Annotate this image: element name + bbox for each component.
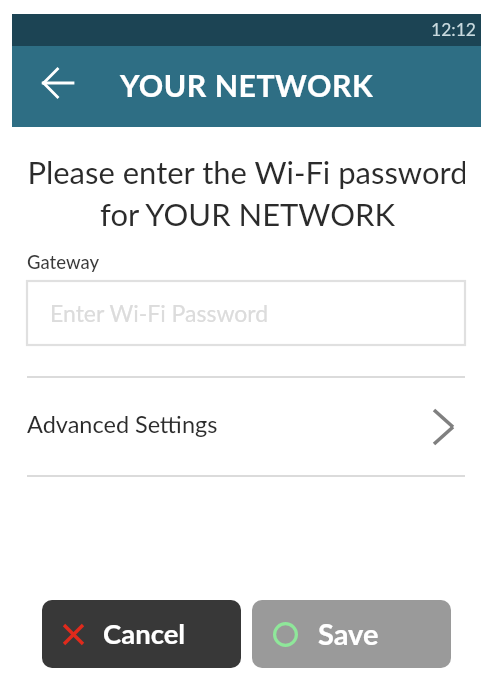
staticText: 12:12 — [431, 19, 476, 40]
button[interactable]: Save — [252, 600, 451, 668]
staticText: YOUR NETWORK — [120, 67, 374, 103]
button[interactable]: Enter Wi-Fi Password — [27, 281, 465, 345]
button[interactable]: Advanced Settings — [27, 378, 465, 475]
staticText: Save — [318, 616, 379, 651]
staticText: Enter Wi-Fi Password — [50, 299, 269, 327]
button[interactable]: Back — [12, 46, 102, 127]
staticText: Cancel — [103, 617, 186, 650]
staticText: Gateway — [27, 251, 99, 273]
staticText: Advanced Settings — [27, 410, 218, 438]
staticText: Please enter the Wi-Fi password for YOUR… — [27, 153, 465, 232]
button[interactable]: Cancel — [42, 600, 241, 668]
